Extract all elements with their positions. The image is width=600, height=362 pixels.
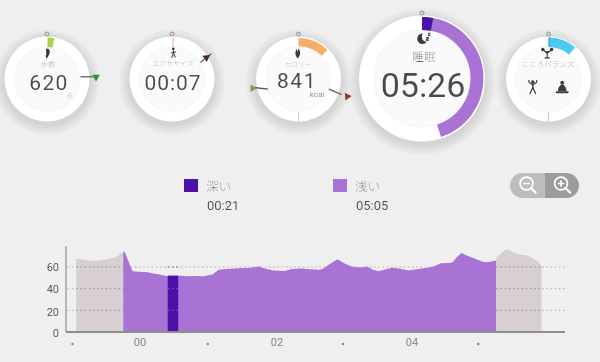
staticText: 深い [206,176,246,194]
staticText: 60 [29,261,59,274]
staticText: 620 [14,71,84,96]
staticText: 歩 [62,91,78,100]
button[interactable]: Zoom out [510,173,545,198]
staticText: 05:26 [363,65,483,105]
staticText: 歩数 [18,58,78,69]
staticText: こころバランス [503,58,593,69]
staticText: 05:05 [356,198,401,213]
staticText: 00 [125,336,155,349]
staticText: エクササイズ [133,58,213,68]
staticText: 0 [29,327,59,340]
staticText: 04 [397,336,427,349]
staticText: 浅い [355,176,395,194]
button[interactable]: Zoom in [545,173,579,198]
staticText: 02 [262,336,292,349]
staticText: 00:21 [207,198,252,213]
staticText: 20 [29,306,59,319]
staticText: カロリー [268,59,328,69]
staticText: 00:07 [128,71,218,96]
staticText: kcal [302,90,332,99]
staticText: 40 [29,283,59,296]
staticText: 睡眠 [389,48,459,65]
staticText: 841 [262,69,332,94]
